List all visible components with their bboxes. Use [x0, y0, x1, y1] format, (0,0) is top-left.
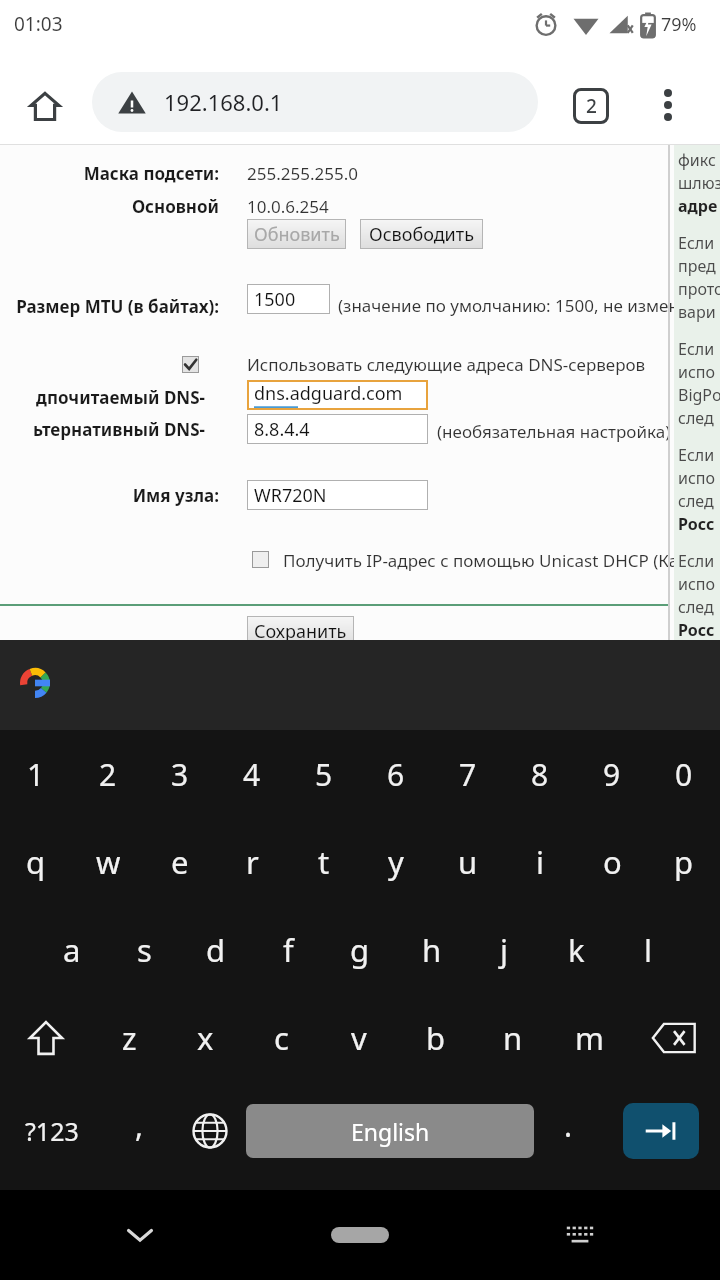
- staticText: испол: [678, 361, 720, 384]
- button[interactable]: m: [551, 994, 628, 1082]
- button[interactable]: x: [167, 994, 243, 1082]
- button[interactable]: Hide keyboard: [110, 1205, 170, 1265]
- button[interactable]: 6: [360, 730, 432, 818]
- button[interactable]: b: [397, 994, 474, 1082]
- button[interactable]: 3: [144, 730, 216, 818]
- staticText: b: [426, 1017, 446, 1059]
- button[interactable]: f: [252, 906, 324, 994]
- staticText: q: [26, 841, 46, 883]
- staticText: y: [388, 841, 404, 883]
- button[interactable]: 5: [288, 730, 360, 818]
- button[interactable]: r: [216, 818, 288, 906]
- button[interactable]: 2: [72, 730, 144, 818]
- staticText: 255.255.255.0: [247, 162, 358, 185]
- button[interactable]: t: [288, 818, 360, 906]
- button[interactable]: l: [612, 906, 684, 994]
- button[interactable]: Checked: [182, 356, 199, 373]
- button[interactable]: y: [360, 818, 432, 906]
- button[interactable]: j: [468, 906, 540, 994]
- button[interactable]: Обновить: [247, 219, 346, 249]
- staticText: 01:03: [14, 11, 63, 37]
- staticText: ?123: [25, 1114, 79, 1148]
- staticText: c: [274, 1017, 289, 1059]
- button[interactable]: 192.168.0.1: [92, 72, 538, 132]
- button[interactable]: More options: [640, 77, 696, 133]
- button[interactable]: Tabs, 2 open: [562, 77, 620, 135]
- staticText: k: [568, 929, 585, 971]
- staticText: f: [283, 929, 294, 971]
- button[interactable]: dns.adguard.com: [247, 380, 428, 410]
- staticText: t: [318, 841, 330, 883]
- staticText: фикс: [678, 149, 716, 172]
- staticText: l: [644, 929, 652, 971]
- staticText: Если: [678, 232, 715, 255]
- button[interactable]: 0: [648, 730, 720, 818]
- staticText: Имя узла:: [100, 484, 219, 507]
- button[interactable]: Освободить: [360, 219, 483, 249]
- staticText: 2: [99, 754, 117, 795]
- button[interactable]: English: [246, 1104, 534, 1158]
- button[interactable]: 9: [576, 730, 648, 818]
- button[interactable]: h: [396, 906, 468, 994]
- staticText: 1500: [254, 287, 296, 312]
- staticText: m: [575, 1017, 604, 1059]
- button[interactable]: ?123: [0, 1082, 104, 1180]
- button[interactable]: q: [0, 818, 72, 906]
- staticText: след: [678, 596, 714, 619]
- staticText: испол: [678, 573, 720, 596]
- button[interactable]: ,: [104, 1082, 174, 1180]
- button[interactable]: Сохранить: [247, 616, 354, 646]
- button[interactable]: p: [648, 818, 720, 906]
- button[interactable]: g: [324, 906, 396, 994]
- button[interactable]: z: [91, 994, 167, 1082]
- button[interactable]: w: [72, 818, 144, 906]
- button[interactable]: Home: [18, 79, 72, 133]
- button[interactable]: 8: [504, 730, 576, 818]
- staticText: w: [96, 841, 121, 883]
- staticText: 6: [387, 754, 405, 795]
- button[interactable]: u: [432, 818, 504, 906]
- button[interactable]: .: [534, 1082, 602, 1180]
- button[interactable]: Switch keyboard: [550, 1205, 610, 1265]
- staticText: ьтернативный DNS-сервер:: [0, 418, 205, 441]
- staticText: 7: [459, 754, 477, 795]
- button[interactable]: a: [36, 906, 108, 994]
- button[interactable]: WR720N: [247, 480, 428, 510]
- button[interactable]: e: [144, 818, 216, 906]
- staticText: a: [63, 929, 81, 971]
- button[interactable]: Change language: [174, 1082, 246, 1180]
- button[interactable]: i: [504, 818, 576, 906]
- button[interactable]: c: [243, 994, 320, 1082]
- button[interactable]: 1500: [247, 284, 330, 314]
- button[interactable]: Unchecked: [252, 551, 269, 568]
- staticText: English: [351, 1116, 430, 1147]
- staticText: Использовать следующие адреса DNS-сервер…: [247, 353, 646, 376]
- button[interactable]: Shift: [0, 994, 91, 1082]
- staticText: вариа: [678, 301, 720, 324]
- staticText: след: [678, 407, 714, 430]
- button[interactable]: Next: [623, 1103, 699, 1159]
- staticText: след: [678, 490, 714, 513]
- staticText: 8: [531, 754, 549, 795]
- button[interactable]: 8.8.4.4: [247, 414, 428, 444]
- staticText: i: [536, 841, 544, 883]
- button[interactable]: v: [320, 994, 397, 1082]
- button[interactable]: n: [474, 994, 551, 1082]
- button[interactable]: Backspace: [628, 994, 720, 1082]
- button[interactable]: 7: [432, 730, 504, 818]
- staticText: 2: [586, 93, 597, 119]
- staticText: d: [206, 929, 226, 971]
- staticText: Получить IP-адрес с помощью Unicast DHCP…: [283, 549, 720, 572]
- button[interactable]: s: [108, 906, 180, 994]
- staticText: адре: [678, 195, 718, 218]
- button[interactable]: o: [576, 818, 648, 906]
- staticText: dns.adguard.com: [254, 381, 403, 406]
- staticText: h: [422, 929, 442, 971]
- button[interactable]: k: [540, 906, 612, 994]
- button[interactable]: 1: [0, 730, 72, 818]
- staticText: Если: [678, 550, 715, 573]
- button[interactable]: 4: [216, 730, 288, 818]
- button[interactable]: d: [180, 906, 252, 994]
- button[interactable]: Google search: [14, 662, 56, 704]
- button[interactable]: Home: [330, 1205, 390, 1265]
